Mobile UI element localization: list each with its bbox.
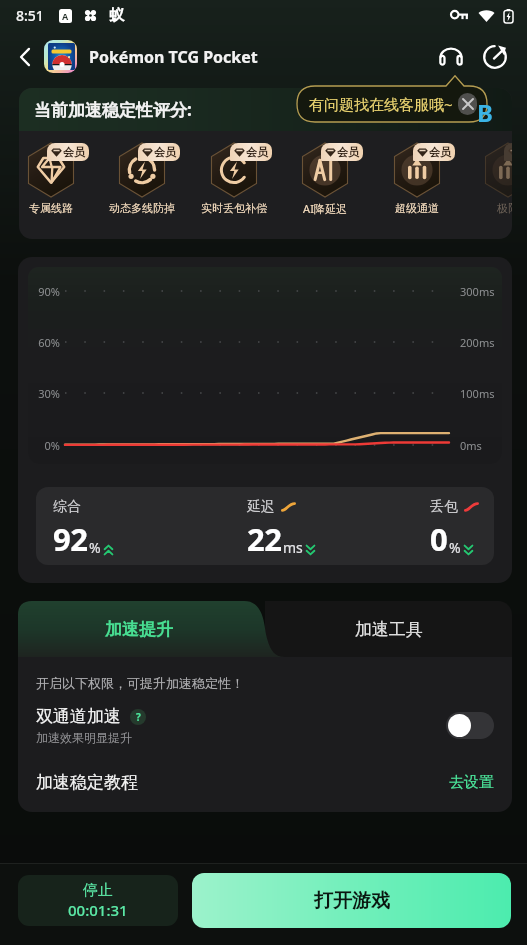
staticText: 动态多线防掉: [109, 201, 175, 215]
staticText: 会员: [154, 145, 176, 159]
button[interactable]: 停止: [18, 875, 178, 926]
staticText: 超级通道: [395, 201, 439, 215]
button[interactable]: Toggle dual channel acceleration: [446, 712, 494, 739]
staticText: 丢包: [430, 498, 458, 516]
staticText: 300ms: [460, 284, 495, 299]
staticText: 极限: [497, 201, 512, 215]
button[interactable]: 加速稳定教程: [36, 767, 494, 797]
button[interactable]: Back: [6, 38, 44, 76]
staticText: %: [89, 538, 101, 557]
staticText: 实时丢包补偿: [201, 201, 267, 215]
staticText: 开启以下权限，可提升加速稳定性！: [36, 675, 244, 691]
staticText: 会员: [429, 145, 451, 159]
staticText: 加速稳定教程: [36, 772, 138, 793]
staticText: %: [449, 538, 461, 557]
staticText: 200ms: [460, 335, 495, 350]
staticText: 打开游戏: [314, 889, 390, 913]
staticText: 22: [247, 518, 282, 560]
staticText: 蚁: [109, 6, 124, 25]
staticText: Pokémon TCG Pocket: [89, 46, 258, 68]
staticText: 综合: [53, 498, 81, 516]
staticText: 会员: [246, 145, 268, 159]
staticText: 加速提升: [105, 619, 173, 640]
staticText: 加速效果明显提升: [36, 730, 132, 745]
button[interactable]: 会员: [379, 131, 455, 239]
staticText: A: [62, 10, 69, 22]
staticText: 30%: [28, 386, 60, 401]
staticText: 会员: [63, 145, 85, 159]
button[interactable]: Customer service: [429, 35, 473, 79]
staticText: 60%: [28, 335, 60, 350]
button[interactable]: 会员: [19, 131, 89, 239]
staticText: 有问题找在线客服哦~: [309, 94, 453, 114]
staticText: 当前加速稳定性评分:: [34, 98, 192, 121]
staticText: 加速工具: [355, 619, 423, 640]
staticText: 延迟: [247, 498, 275, 516]
button[interactable]: 会员: [287, 131, 363, 239]
staticText: 0: [430, 518, 448, 560]
staticText: 92: [53, 518, 88, 560]
button[interactable]: 会员: [104, 131, 180, 239]
button[interactable]: Refresh: [473, 35, 517, 79]
button[interactable]: Help: [130, 709, 146, 725]
staticText: 双通道加速: [36, 706, 121, 727]
staticText: ms: [283, 538, 303, 557]
staticText: 专属线路: [29, 201, 73, 215]
staticText: ?: [136, 710, 141, 724]
button[interactable]: Close: [458, 93, 477, 115]
staticText: 0%: [28, 438, 60, 453]
staticText: 90%: [28, 284, 60, 299]
staticText: B: [477, 96, 493, 129]
staticText: 00:01:31: [68, 900, 128, 920]
staticText: 去设置: [449, 773, 494, 792]
button[interactable]: 加速提升: [18, 601, 284, 657]
staticText: 8:51: [16, 6, 44, 25]
button[interactable]: 打开游戏: [192, 873, 511, 928]
staticText: AI降延迟: [303, 201, 347, 216]
staticText: 停止: [83, 881, 113, 900]
staticText: 100ms: [460, 386, 495, 401]
staticText: 0ms: [460, 438, 482, 453]
button[interactable]: 会员: [196, 131, 272, 239]
staticText: 会员: [337, 145, 359, 159]
button[interactable]: 会员: [470, 131, 512, 239]
button[interactable]: 加速工具: [265, 601, 512, 657]
